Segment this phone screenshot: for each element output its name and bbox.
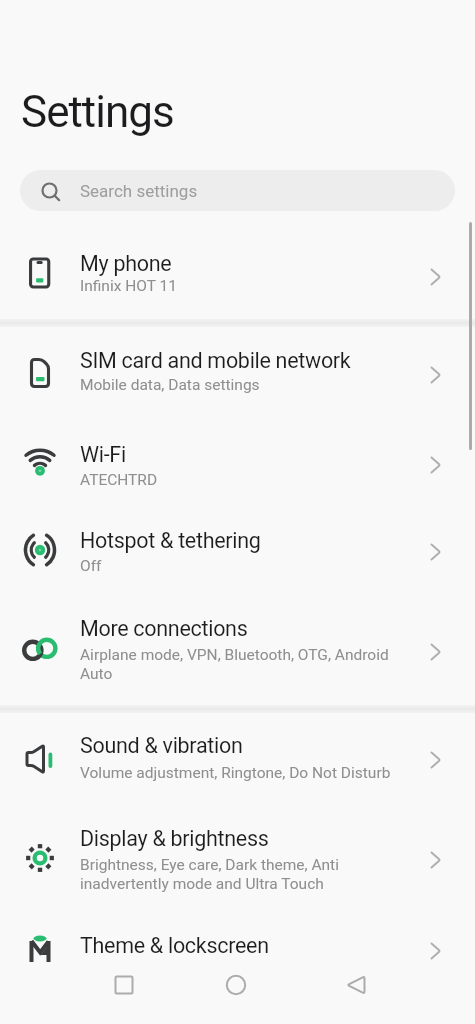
staticText: Theme & lockscreen <box>80 933 269 958</box>
staticText: Airplane mode, VPN, Bluetooth, OTG, Andr… <box>80 646 389 683</box>
staticText: Brightness, Eye care, Dark theme, Anti i… <box>80 856 339 893</box>
button[interactable]: Search settings <box>20 170 455 211</box>
staticText: SIM card and mobile network <box>80 348 351 373</box>
button[interactable]: SIM card and mobile network <box>0 321 475 416</box>
button[interactable] <box>92 961 156 1009</box>
button[interactable]: Wi-Fi <box>0 416 475 506</box>
staticText: Off <box>80 557 102 575</box>
button[interactable]: Display & brightness <box>0 800 475 910</box>
staticText: My phone <box>80 251 172 276</box>
staticText: Hotspot & tethering <box>80 528 261 553</box>
button[interactable]: Theme & lockscreen <box>0 910 475 965</box>
staticText: ATECHTRD <box>80 471 158 489</box>
button[interactable] <box>317 961 381 1009</box>
staticText: Settings <box>21 86 174 138</box>
staticText: Mobile data, Data settings <box>80 376 260 394</box>
button[interactable]: Hotspot & tethering <box>0 506 475 593</box>
staticText: Sound & vibration <box>80 733 243 758</box>
button[interactable]: My phone <box>0 233 475 313</box>
staticText: Search settings <box>80 181 198 201</box>
staticText: Volume adjustment, Ringtone, Do Not Dist… <box>80 764 391 782</box>
staticText: Display & brightness <box>80 826 269 851</box>
staticText: Wi-Fi <box>80 442 126 467</box>
staticText: More connections <box>80 616 248 641</box>
button[interactable] <box>205 961 269 1009</box>
button[interactable]: More connections <box>0 593 475 699</box>
button[interactable]: Sound & vibration <box>0 707 475 800</box>
staticText: Infinix HOT 11 <box>80 277 177 295</box>
